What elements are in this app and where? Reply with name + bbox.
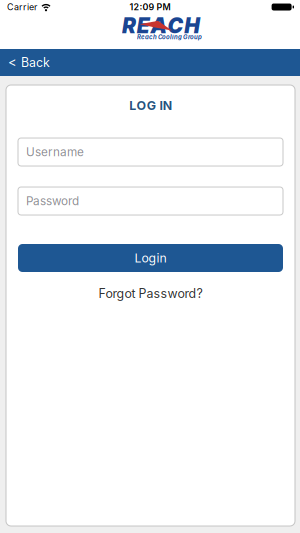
staticText: Carrier [7, 2, 37, 12]
staticText: Login [134, 251, 166, 265]
staticText: LOG IN [129, 98, 172, 113]
button[interactable]: < [0, 55, 50, 70]
staticText: < [8, 55, 17, 70]
staticText: REACH [122, 13, 200, 38]
staticText: Password [26, 194, 79, 208]
staticText: 12:09 PM [129, 2, 170, 12]
staticText: Forgot Password? [98, 286, 202, 301]
staticText: Back [21, 55, 50, 70]
button[interactable]: Password text field [18, 187, 283, 215]
button[interactable]: Login [18, 244, 283, 272]
staticText: Reach Cooling Group [137, 33, 202, 41]
staticText: Username [26, 145, 84, 159]
button[interactable]: Username text field [18, 138, 283, 166]
button[interactable]: Forgot Password? [98, 286, 202, 301]
